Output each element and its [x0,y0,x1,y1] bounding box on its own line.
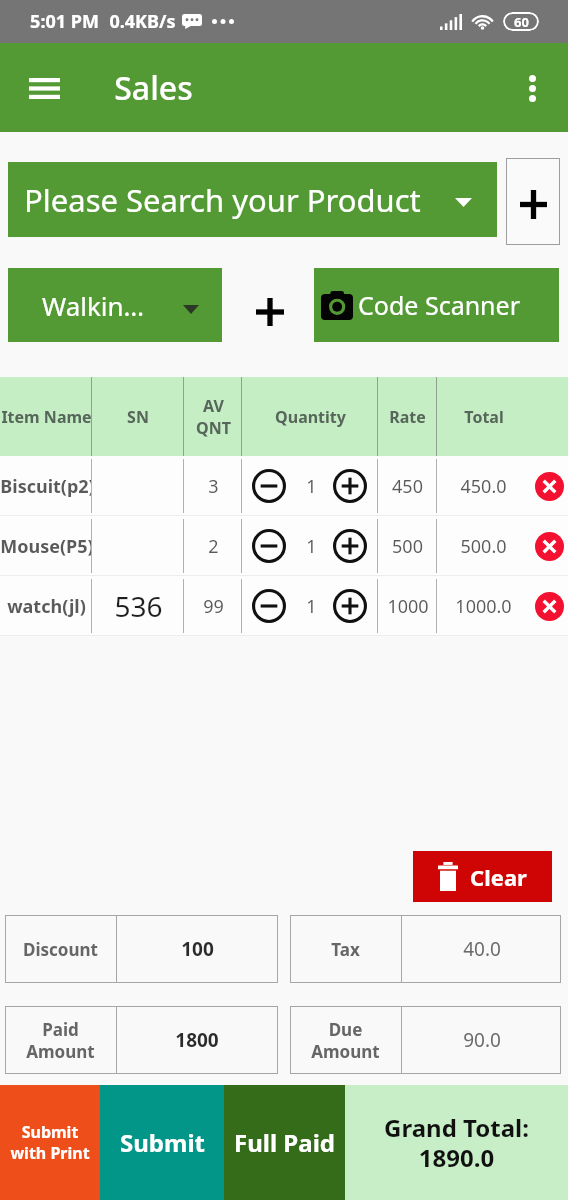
staticText: Clear [470,862,527,892]
button[interactable]: More options [504,60,560,116]
staticText: 500.0 [460,534,507,559]
staticText: Rate [389,406,426,428]
staticText: SN [127,406,149,428]
staticText: 2 [208,534,219,559]
staticText: Due Amount [311,1018,380,1063]
staticText: 450.0 [460,474,507,499]
staticText: Full Paid [234,1126,335,1159]
button[interactable]: Decrease quantity [252,529,286,563]
button[interactable]: Decrease quantity [252,589,286,623]
button[interactable]: Please Search your Product [8,162,497,237]
button[interactable]: 40.0 [402,915,562,983]
staticText: watch(jl) [7,594,86,619]
staticText: Grand Total: 1890.0 [384,1111,529,1174]
staticText: Discount [23,938,98,961]
staticText: Total [464,406,504,428]
button[interactable]: Walkin… [8,268,222,342]
staticText: 3 [208,474,219,499]
staticText: 450 [392,474,423,499]
staticText: Quantity [275,406,346,428]
staticText: 100 [181,936,214,962]
button[interactable]: Menu [13,57,75,119]
staticText: 40.0 [463,936,501,962]
staticText: 1 [306,594,317,619]
button[interactable]: 1800 [117,1006,277,1074]
button[interactable]: Add product [506,158,560,245]
staticText: 60 [514,13,529,31]
button[interactable]: Full Paid [224,1085,345,1200]
button[interactable]: Submit with Print [0,1085,100,1200]
staticText: 99 [203,594,224,619]
staticText: Paid Amount [26,1018,95,1063]
button[interactable]: Clear [413,851,552,902]
button[interactable]: Increase quantity [333,589,367,623]
button[interactable]: Code Scanner [314,268,559,342]
staticText: 0.4KB/s [109,9,176,34]
staticText: Walkin… [42,288,145,323]
staticText: Mouse(P5) [0,534,92,559]
staticText: AV QNT [196,395,231,439]
staticText: Code Scanner [358,288,520,322]
staticText: Sales [114,66,193,110]
staticText: 90.0 [463,1027,501,1053]
button[interactable]: Remove Biscuit(p2) [531,456,568,516]
staticText: 5:01 PM [30,9,99,34]
button[interactable]: Submit [100,1085,224,1200]
staticText: 500 [392,534,423,559]
staticText: Submit [120,1126,205,1159]
staticText: Biscuit(p2) [0,474,92,499]
staticText: 1000.0 [455,594,512,619]
button[interactable]: 90.0 [402,1006,562,1074]
button[interactable]: Increase quantity [333,529,367,563]
staticText: Item Name [1,406,92,428]
button[interactable]: Increase quantity [333,469,367,503]
staticText: 1 [306,534,317,559]
staticText: 1 [306,474,317,499]
staticText: Tax [331,938,360,961]
button[interactable]: 100 [117,915,277,983]
button[interactable]: Decrease quantity [252,469,286,503]
staticText: Submit with Print [10,1121,90,1164]
staticText: 1000 [387,594,429,619]
button[interactable]: Remove Mouse(P5) [531,516,568,576]
staticText: 1800 [175,1027,219,1053]
staticText: Please Search your Product [24,179,421,221]
staticText: 536 [114,587,163,625]
button[interactable]: Remove watch(jl) [531,576,568,636]
